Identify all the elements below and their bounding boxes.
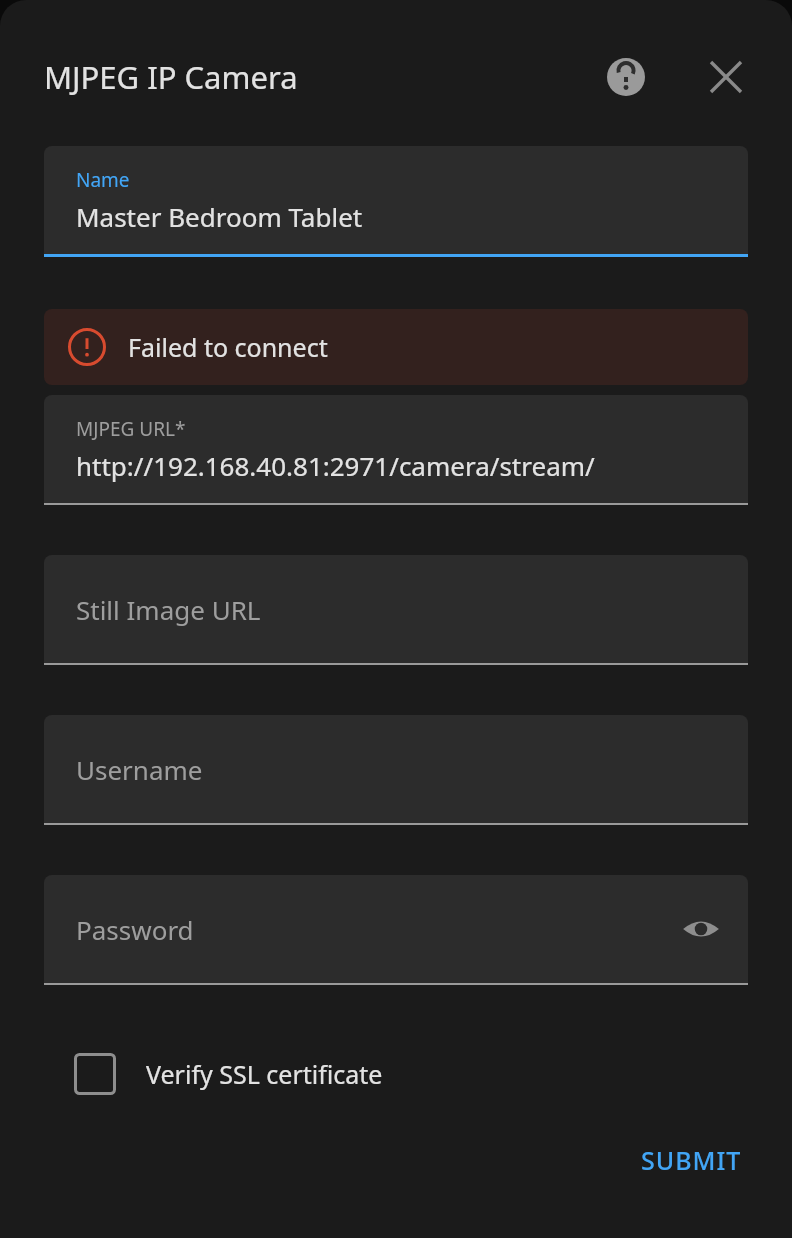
staticText: Verify SSL certificate	[146, 1057, 383, 1091]
staticText: http://192.168.40.81:2971/camera/stream/	[76, 448, 595, 483]
staticText: Failed to connect	[128, 330, 328, 364]
button[interactable]: SUBMIT	[625, 1129, 758, 1191]
button[interactable]: Username	[44, 715, 748, 825]
staticText: Password	[76, 912, 194, 947]
staticText: MJPEG IP Camera	[44, 56, 298, 98]
staticText: Still Image URL	[76, 592, 261, 627]
staticText: MJPEG URL*	[76, 416, 186, 442]
staticText: SUBMIT	[641, 1143, 742, 1177]
button[interactable]: Verify SSL certificate	[44, 1041, 748, 1107]
button[interactable]: Name	[44, 146, 748, 257]
button[interactable]: Password	[44, 875, 748, 985]
staticText: Master Bedroom Tablet	[76, 199, 363, 234]
button[interactable]: Help	[594, 45, 658, 109]
button[interactable]: Close	[694, 45, 758, 109]
staticText: Username	[76, 752, 203, 787]
button[interactable]: Still Image URL	[44, 555, 748, 665]
button[interactable]: Show password	[670, 898, 732, 960]
staticText: Name	[76, 167, 130, 193]
button[interactable]: MJPEG URL*	[44, 395, 748, 505]
